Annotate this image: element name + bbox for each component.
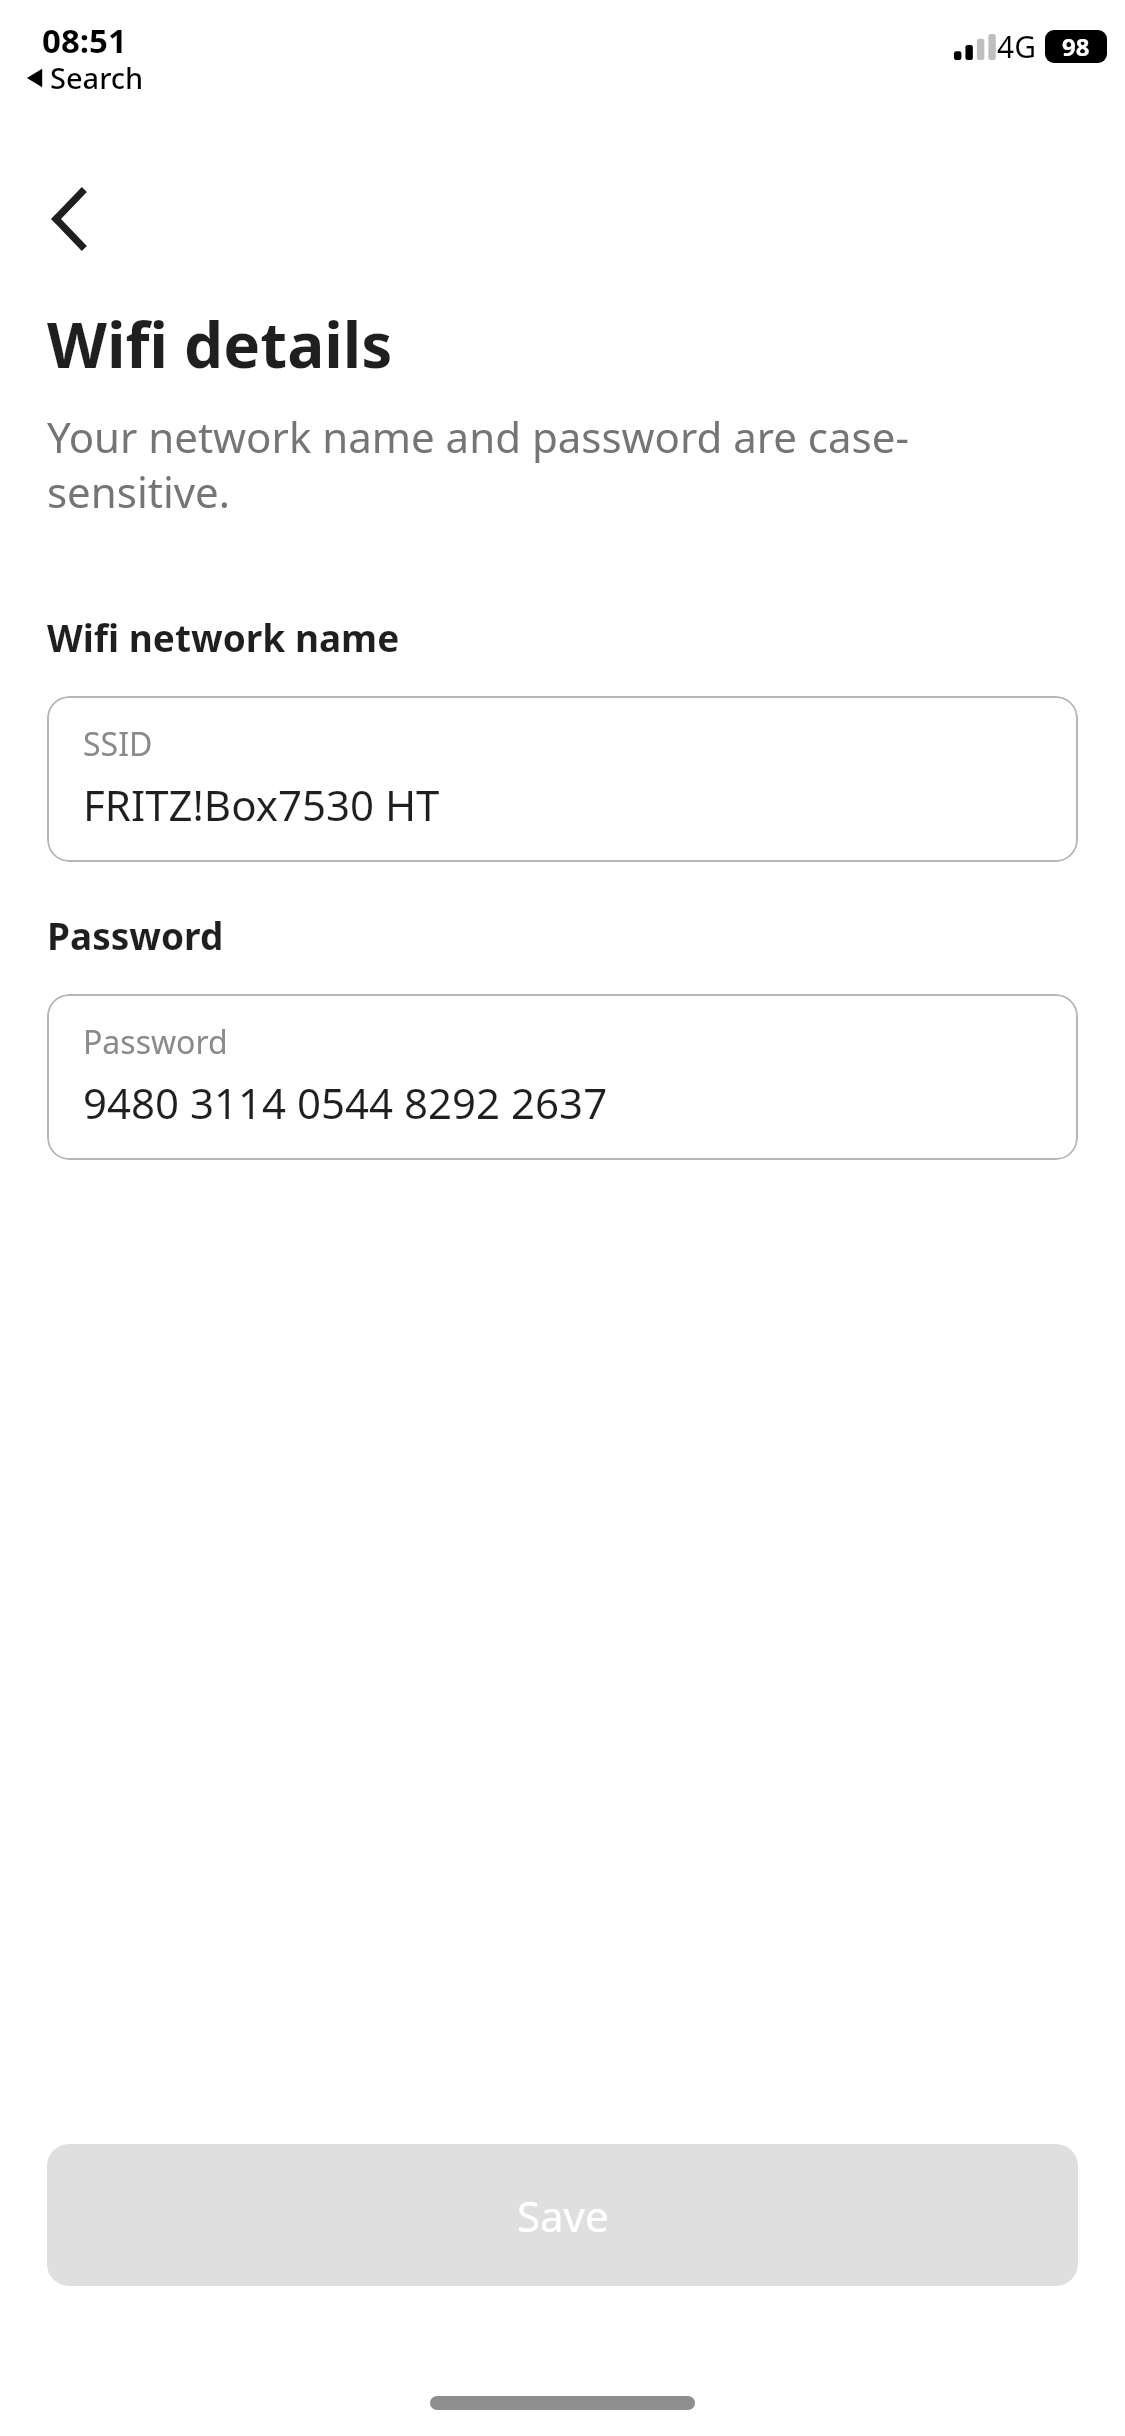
- staticText: 4G: [997, 26, 1036, 67]
- staticText: 98: [1062, 30, 1090, 63]
- staticText: 08:51: [42, 18, 127, 63]
- button[interactable]: Search: [26, 58, 144, 97]
- staticText: FRITZ!Box7530 HT: [83, 776, 440, 833]
- button[interactable]: Back: [30, 180, 108, 258]
- staticText: 9480 3114 0544 8292 2637: [83, 1074, 608, 1131]
- button[interactable]: SSID: [47, 696, 1078, 862]
- staticText: Save: [517, 2187, 609, 2244]
- staticText: Password: [47, 910, 224, 960]
- staticText: Wifi network name: [47, 612, 400, 662]
- staticText: Your network name and password are case-…: [47, 408, 1055, 520]
- staticText: Search: [50, 58, 144, 97]
- staticText: SSID: [83, 722, 153, 766]
- staticText: Wifi details: [47, 302, 393, 386]
- button[interactable]: Password: [47, 994, 1078, 1160]
- staticText: Password: [83, 1020, 228, 1064]
